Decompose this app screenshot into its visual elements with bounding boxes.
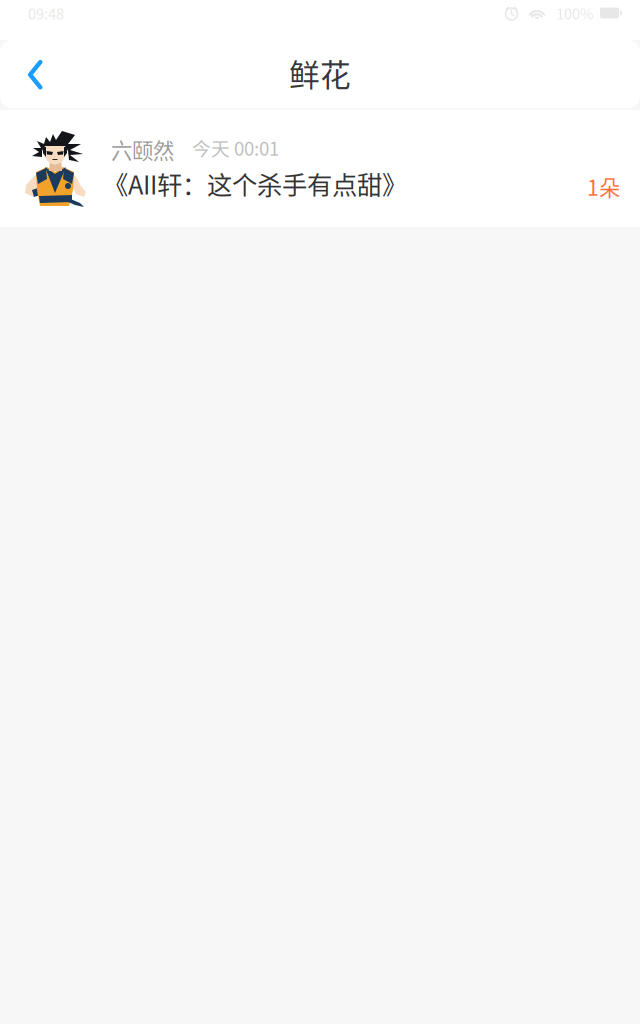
staticText: 1朵 — [587, 171, 620, 202]
staticText: 鲜花 — [289, 51, 351, 95]
button[interactable]: Back — [11, 39, 55, 95]
staticText: 六颐然 — [111, 134, 174, 165]
staticText: 100% — [556, 2, 594, 24]
staticText: 《AII轩：这个杀手有点甜》 — [103, 165, 407, 202]
staticText: 09:48 — [28, 2, 64, 24]
staticText: 今天 00:01 — [192, 134, 279, 161]
button[interactable]: 六颐然 — [0, 110, 640, 227]
